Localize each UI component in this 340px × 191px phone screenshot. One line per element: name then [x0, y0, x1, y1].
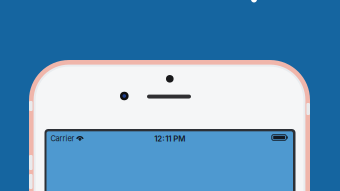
staticText: Carrier [51, 134, 75, 143]
staticText: 12:11 PM [154, 134, 185, 143]
